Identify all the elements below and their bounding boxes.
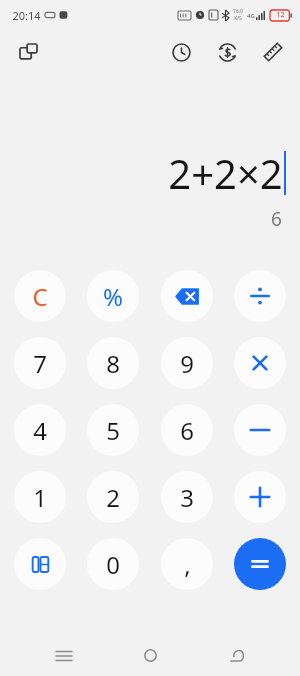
- button[interactable]: 2: [87, 471, 139, 523]
- button[interactable]: Minus: [234, 404, 286, 456]
- button[interactable]: Multiply: [234, 337, 286, 389]
- button[interactable]: 5: [87, 404, 139, 456]
- button[interactable]: 1: [14, 471, 66, 523]
- staticText: 2: [106, 481, 120, 514]
- staticText: ,: [184, 548, 191, 581]
- button[interactable]: Backspace: [161, 270, 213, 322]
- staticText: 20:14: [12, 8, 41, 23]
- staticText: 4: [33, 414, 47, 447]
- staticText: 4G: [247, 12, 255, 20]
- button[interactable]: Plus: [234, 471, 286, 523]
- staticText: C: [32, 280, 48, 313]
- staticText: 1: [33, 481, 47, 514]
- staticText: 5: [106, 414, 120, 447]
- button[interactable]: 6: [161, 404, 213, 456]
- staticText: 3: [180, 481, 194, 514]
- button[interactable]: C: [14, 270, 66, 322]
- button[interactable]: 0: [87, 538, 139, 590]
- button[interactable]: ,: [161, 538, 213, 590]
- staticText: 0: [106, 548, 120, 581]
- staticText: 8: [106, 347, 120, 380]
- staticText: 6: [271, 206, 282, 232]
- button[interactable]: Unit converter: [256, 35, 290, 69]
- button[interactable]: %: [87, 270, 139, 322]
- button[interactable]: 8: [87, 337, 139, 389]
- button[interactable]: 9: [161, 337, 213, 389]
- button[interactable]: 7: [14, 337, 66, 389]
- staticText: 76,0: [233, 8, 243, 15]
- button[interactable]: Floating window: [10, 34, 46, 70]
- staticText: %: [103, 280, 123, 313]
- button[interactable]: History: [164, 35, 198, 69]
- button[interactable]: 4: [14, 404, 66, 456]
- staticText: 6: [180, 414, 194, 447]
- button[interactable]: Equals: [234, 538, 286, 590]
- button[interactable]: Scientific mode: [14, 538, 66, 590]
- staticText: 7: [33, 347, 47, 380]
- button[interactable]: 3: [161, 471, 213, 523]
- button[interactable]: Back: [214, 635, 258, 676]
- button[interactable]: Home: [128, 635, 172, 676]
- button[interactable]: Currency converter: [210, 35, 244, 69]
- staticText: 9: [180, 347, 194, 380]
- button[interactable]: Recent apps: [42, 635, 86, 676]
- staticText: K/S: [234, 15, 242, 22]
- staticText: 2+2×2: [168, 146, 283, 200]
- staticText: 12: [276, 10, 285, 20]
- button[interactable]: Divide: [234, 270, 286, 322]
